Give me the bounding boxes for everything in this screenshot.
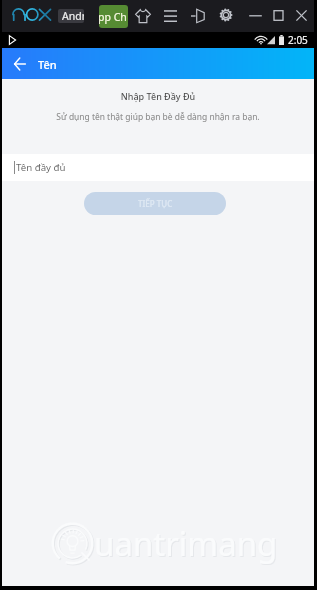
staticText: TIẾP TỤC (138, 198, 173, 209)
button[interactable]: Minimize (248, 8, 263, 23)
staticText: Nhập Tên Đầy Đủ (2, 90, 314, 102)
staticText: pp Ch (99, 10, 127, 24)
staticText: uantrimang (95, 522, 279, 567)
button[interactable]: Skins (135, 9, 151, 23)
button[interactable]: Menu (164, 10, 177, 22)
button[interactable]: TIẾP TỤC (84, 192, 226, 215)
button[interactable]: Maximize (271, 8, 286, 23)
button[interactable]: Tên đầy đủ (2, 154, 314, 181)
button[interactable]: Back (10, 53, 30, 73)
button[interactable]: Close (294, 8, 309, 23)
staticText: Tên đầy đủ (16, 161, 66, 174)
staticText: Tên (38, 57, 57, 72)
staticText: 2:05 (288, 33, 308, 47)
staticText: Sử dụng tên thật giúp bạn bè dễ dàng nhậ… (2, 111, 314, 123)
button[interactable]: pp Ch (99, 5, 128, 28)
staticText: Andr (62, 9, 84, 23)
button[interactable]: Pin window (191, 9, 206, 23)
button[interactable]: Settings (219, 8, 233, 22)
staticText: uantrimang (94, 521, 278, 566)
button[interactable]: Andr (58, 9, 84, 23)
